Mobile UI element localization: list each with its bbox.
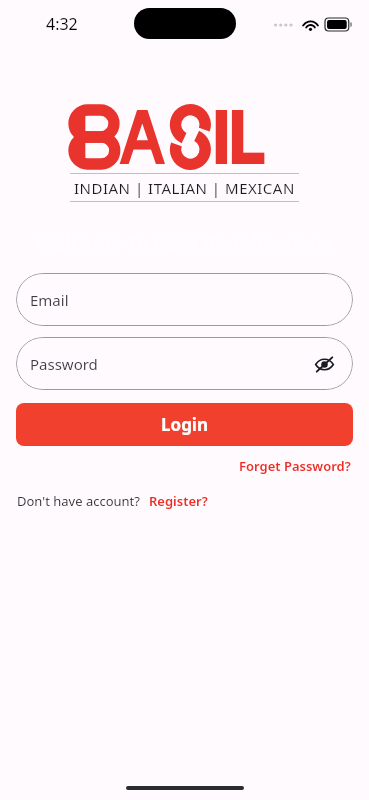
button[interactable]: Show password	[311, 351, 337, 377]
button[interactable]: Register?	[149, 489, 208, 513]
button[interactable]: Email	[16, 273, 353, 326]
button[interactable]: Forget Password?	[221, 455, 369, 477]
button[interactable]: Password	[16, 337, 353, 390]
staticText: Login	[161, 413, 209, 436]
staticText: Password	[30, 354, 98, 374]
staticText: Don't have account?	[17, 492, 140, 510]
button[interactable]: Login	[16, 403, 353, 446]
staticText: Email	[30, 290, 69, 310]
staticText: INDIAN | ITALIAN | MEXICAN	[74, 178, 295, 198]
staticText: 4:32	[46, 13, 78, 35]
